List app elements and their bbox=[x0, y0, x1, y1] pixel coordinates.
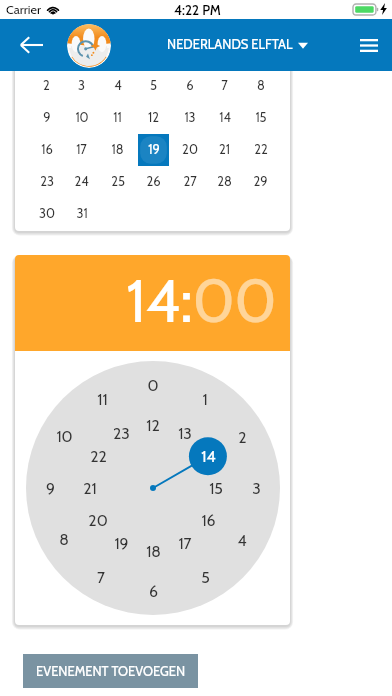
button[interactable]: 31 bbox=[64, 198, 99, 230]
button[interactable]: 5 bbox=[190, 564, 220, 590]
button[interactable]: 1 bbox=[190, 386, 220, 412]
staticText: 10 bbox=[75, 110, 89, 126]
button[interactable]: 16 bbox=[193, 507, 223, 533]
button[interactable]: EVENEMENT TOEVOEGEN bbox=[23, 654, 198, 688]
button[interactable]: 18 bbox=[100, 134, 135, 166]
staticText: 21 bbox=[219, 142, 230, 158]
button[interactable]: 21 bbox=[207, 134, 242, 166]
staticText: 23 bbox=[40, 174, 54, 190]
button[interactable]: 6 bbox=[172, 70, 207, 102]
button[interactable]: 15 bbox=[243, 102, 278, 134]
button[interactable]: 14:00 bbox=[126, 264, 277, 337]
button[interactable]: 26 bbox=[136, 166, 171, 198]
button[interactable]: 16 bbox=[29, 134, 64, 166]
staticText: 14 bbox=[219, 110, 231, 126]
staticText: 0 bbox=[147, 376, 159, 395]
button[interactable]: 12 bbox=[136, 102, 171, 134]
staticText: 27 bbox=[183, 174, 197, 190]
button[interactable]: 11 bbox=[87, 386, 117, 412]
staticText: 26 bbox=[146, 174, 161, 190]
staticText: EVENEMENT TOEVOEGEN bbox=[36, 663, 186, 679]
staticText: 22 bbox=[90, 447, 107, 466]
staticText: 11 bbox=[113, 110, 122, 126]
button[interactable]: 5 bbox=[136, 70, 171, 102]
button[interactable]: 13 bbox=[170, 420, 200, 446]
button[interactable]: 21 bbox=[75, 475, 105, 501]
button[interactable]: Back bbox=[6, 19, 56, 71]
staticText: 16 bbox=[201, 511, 216, 530]
staticText: 18 bbox=[146, 542, 161, 561]
button[interactable]: 15 bbox=[201, 475, 231, 501]
staticText: 28 bbox=[217, 174, 232, 190]
staticText: 4:22 PM bbox=[174, 2, 221, 18]
button[interactable]: 13 bbox=[172, 102, 207, 134]
button[interactable]: 18 bbox=[138, 538, 168, 564]
button[interactable]: 22 bbox=[243, 134, 278, 166]
button[interactable]: 2 bbox=[227, 424, 257, 450]
staticText: NEDERLANDS ELFTAL bbox=[167, 37, 293, 53]
button[interactable]: 20 bbox=[172, 134, 207, 166]
button[interactable]: 11 bbox=[100, 102, 135, 134]
button[interactable]: 7 bbox=[86, 564, 116, 590]
button[interactable]: 4 bbox=[100, 70, 135, 102]
button[interactable]: 8 bbox=[243, 70, 278, 102]
button[interactable]: Team logo bbox=[67, 24, 111, 68]
staticText: 14 bbox=[201, 447, 216, 466]
staticText: 2 bbox=[43, 78, 50, 94]
button[interactable]: 19 bbox=[106, 530, 136, 556]
button[interactable]: 10 bbox=[49, 423, 79, 449]
staticText: 17 bbox=[178, 534, 192, 553]
staticText: 7 bbox=[221, 78, 228, 94]
button[interactable]: 3 bbox=[241, 475, 271, 501]
button[interactable]: 6 bbox=[138, 578, 168, 604]
button[interactable]: 28 bbox=[207, 166, 242, 198]
staticText: 31 bbox=[76, 206, 88, 222]
staticText: 6 bbox=[186, 78, 194, 94]
button[interactable]: 23 bbox=[29, 166, 64, 198]
staticText: 30 bbox=[39, 206, 55, 222]
staticText: 20 bbox=[88, 511, 108, 530]
button[interactable]: 25 bbox=[100, 166, 135, 198]
staticText: 21 bbox=[83, 479, 97, 498]
staticText: 12 bbox=[146, 416, 160, 435]
button[interactable]: 22 bbox=[83, 443, 113, 469]
staticText: 3 bbox=[252, 479, 261, 498]
button[interactable]: 3 bbox=[64, 70, 99, 102]
button[interactable]: 7 bbox=[207, 70, 242, 102]
staticText: 24 bbox=[74, 174, 89, 190]
button[interactable]: 2 bbox=[29, 70, 64, 102]
button[interactable]: 19 bbox=[136, 134, 171, 166]
staticText: 23 bbox=[113, 424, 130, 443]
button[interactable]: 30 bbox=[29, 198, 64, 230]
button[interactable]: 9 bbox=[35, 475, 65, 501]
staticText: 7 bbox=[97, 568, 105, 587]
button[interactable]: 17 bbox=[64, 134, 99, 166]
button[interactable]: 17 bbox=[170, 530, 200, 556]
staticText: 11 bbox=[97, 390, 108, 409]
button[interactable]: 27 bbox=[172, 166, 207, 198]
button[interactable]: 12 bbox=[138, 412, 168, 438]
staticText: 10 bbox=[56, 427, 73, 446]
button[interactable]: 14 bbox=[193, 443, 223, 469]
button[interactable]: 23 bbox=[106, 420, 136, 446]
button[interactable]: 14 bbox=[207, 102, 242, 134]
button[interactable]: 4 bbox=[227, 527, 257, 553]
button[interactable]: Menu bbox=[340, 19, 392, 71]
button[interactable]: NEDERLANDS ELFTAL bbox=[167, 19, 308, 71]
button[interactable]: 29 bbox=[243, 166, 278, 198]
button[interactable]: 20 bbox=[83, 507, 113, 533]
staticText: 5 bbox=[201, 568, 210, 587]
button[interactable]: 0 bbox=[138, 372, 168, 398]
staticText: 4 bbox=[237, 531, 247, 550]
button[interactable]: 24 bbox=[64, 166, 99, 198]
button[interactable]: 8 bbox=[49, 526, 79, 552]
staticText: 9 bbox=[43, 110, 51, 126]
staticText: 13 bbox=[184, 110, 196, 126]
staticText: 12 bbox=[148, 110, 159, 126]
staticText: 1 bbox=[202, 390, 208, 409]
button[interactable]: 9 bbox=[29, 102, 64, 134]
staticText: 17 bbox=[76, 142, 87, 158]
staticText: 9 bbox=[46, 479, 55, 498]
button[interactable]: 10 bbox=[64, 102, 99, 134]
staticText: 2 bbox=[238, 428, 247, 447]
